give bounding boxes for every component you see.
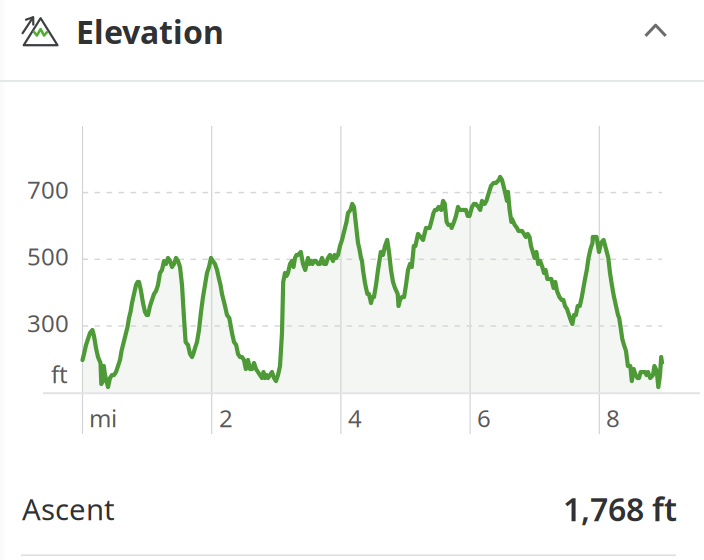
staticText: Elevation: [76, 10, 224, 53]
staticText: 1,768 ft: [563, 488, 677, 530]
staticText: 6: [477, 402, 491, 434]
staticText: Ascent: [22, 489, 115, 528]
staticText: 300: [27, 307, 69, 339]
button[interactable]: Elevation: [0, 0, 704, 80]
staticText: 700: [27, 174, 69, 205]
staticText: 8: [606, 402, 620, 434]
staticText: mi: [89, 402, 117, 434]
staticText: 4: [348, 402, 362, 434]
staticText: 2: [219, 402, 233, 434]
staticText: 500: [27, 240, 69, 272]
staticText: ft: [51, 358, 68, 390]
